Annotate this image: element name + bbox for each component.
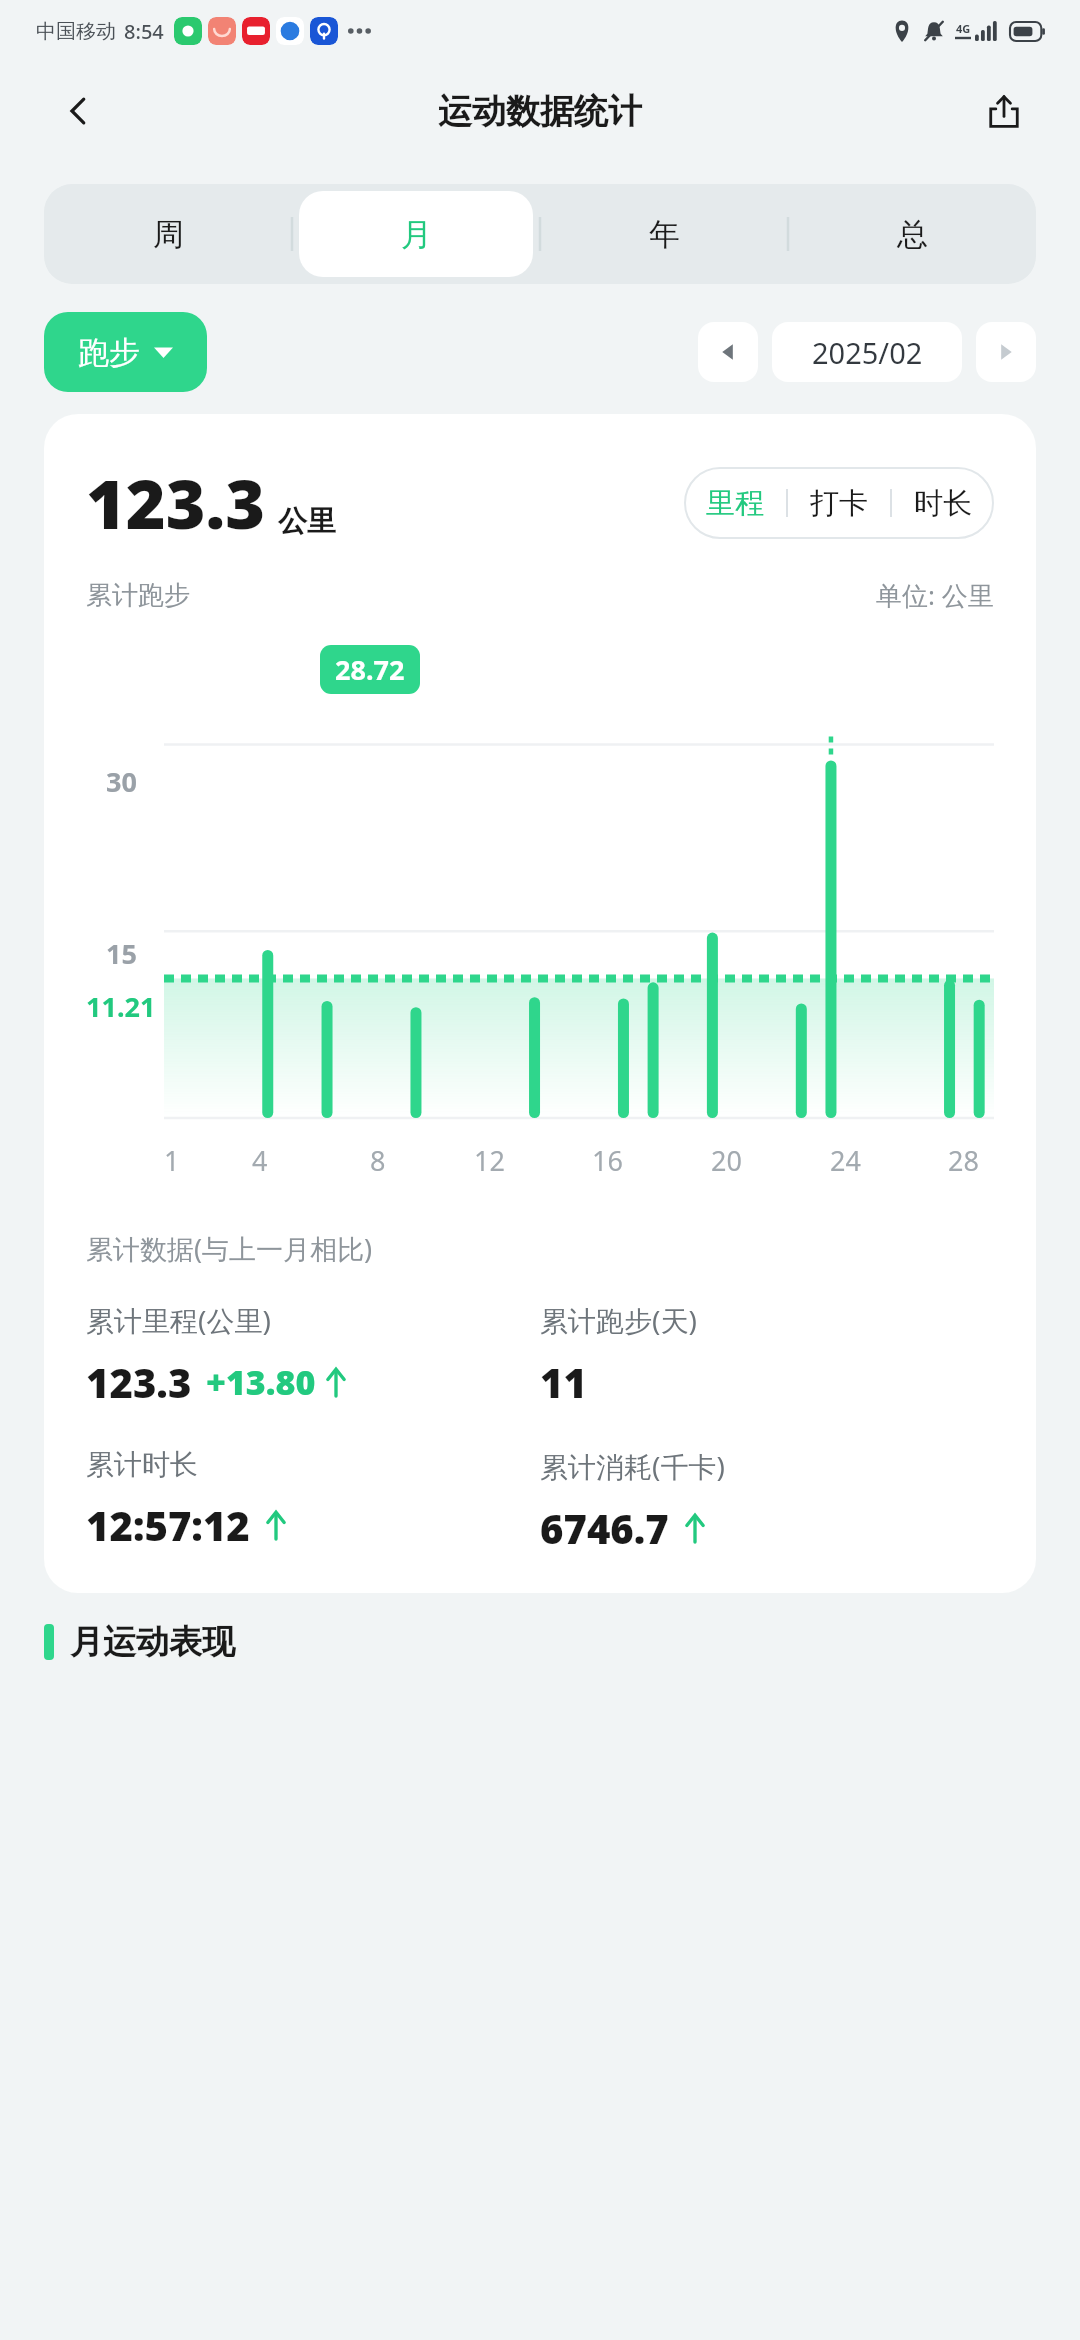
staticText: 4G [956,21,971,36]
staticText: 15 [106,935,137,972]
staticText: 累计时长 [86,1447,198,1482]
staticText: 20 [711,1142,742,1179]
staticText: 时长 [914,485,972,522]
button[interactable]: 跑步 [44,312,207,392]
staticText: 累计跑步(天) [540,1301,697,1339]
staticText: 运动数据统计 [438,90,642,133]
staticText: 总 [897,215,928,254]
button[interactable]: 总 [795,191,1029,277]
staticText: 里程 [706,485,764,522]
button[interactable]: 月 [299,191,533,277]
staticText: 月运动表现 [70,1621,235,1663]
staticText: 123.3 [86,456,266,549]
staticText: 8:54 [124,18,164,45]
staticText: 周 [153,215,184,254]
button[interactable]: 打卡 [788,467,890,539]
button[interactable]: 周 [51,191,285,277]
staticText: 公里 [278,503,336,540]
button[interactable]: 里程 [684,467,786,539]
staticText: 打卡 [810,485,868,522]
staticText: 年 [649,215,680,254]
staticText: 4 [252,1142,268,1179]
staticText: 11.21 [86,988,156,1025]
staticText: 8 [370,1142,386,1179]
staticText: 累计消耗(千卡) [540,1447,725,1485]
staticText: 6746.7 [540,1501,669,1555]
staticText: 累计里程(公里) [86,1301,271,1339]
staticText: 24 [830,1142,861,1179]
button[interactable]: 2025/02 [772,322,962,382]
staticText: 12:57:12 [86,1498,250,1552]
button[interactable]: Back [46,79,110,143]
staticText: 12 [474,1142,505,1179]
button[interactable]: Share [972,79,1036,143]
button[interactable]: Next month [976,322,1036,382]
staticText: 单位: 公里 [876,577,994,613]
staticText: 123.3 [86,1355,192,1409]
staticText: 月 [401,215,432,254]
staticText: 累计数据(与上一月相比) [86,1230,373,1267]
staticText: 累计跑步 [86,579,190,612]
staticText: 1 [164,1142,179,1179]
button[interactable]: 时长 [892,467,994,539]
staticText: 16 [592,1142,623,1179]
staticText: 2025/02 [812,333,923,372]
staticText: 28.72 [335,651,405,688]
staticText: 跑步 [78,333,140,372]
staticText: +13.80 [206,1359,316,1405]
staticText: 30 [106,763,137,800]
staticText: 中国移动 [36,19,116,44]
button[interactable]: Previous month [698,322,758,382]
staticText: 28 [948,1142,979,1179]
staticText: 11 [540,1355,587,1409]
button[interactable]: 年 [547,191,781,277]
